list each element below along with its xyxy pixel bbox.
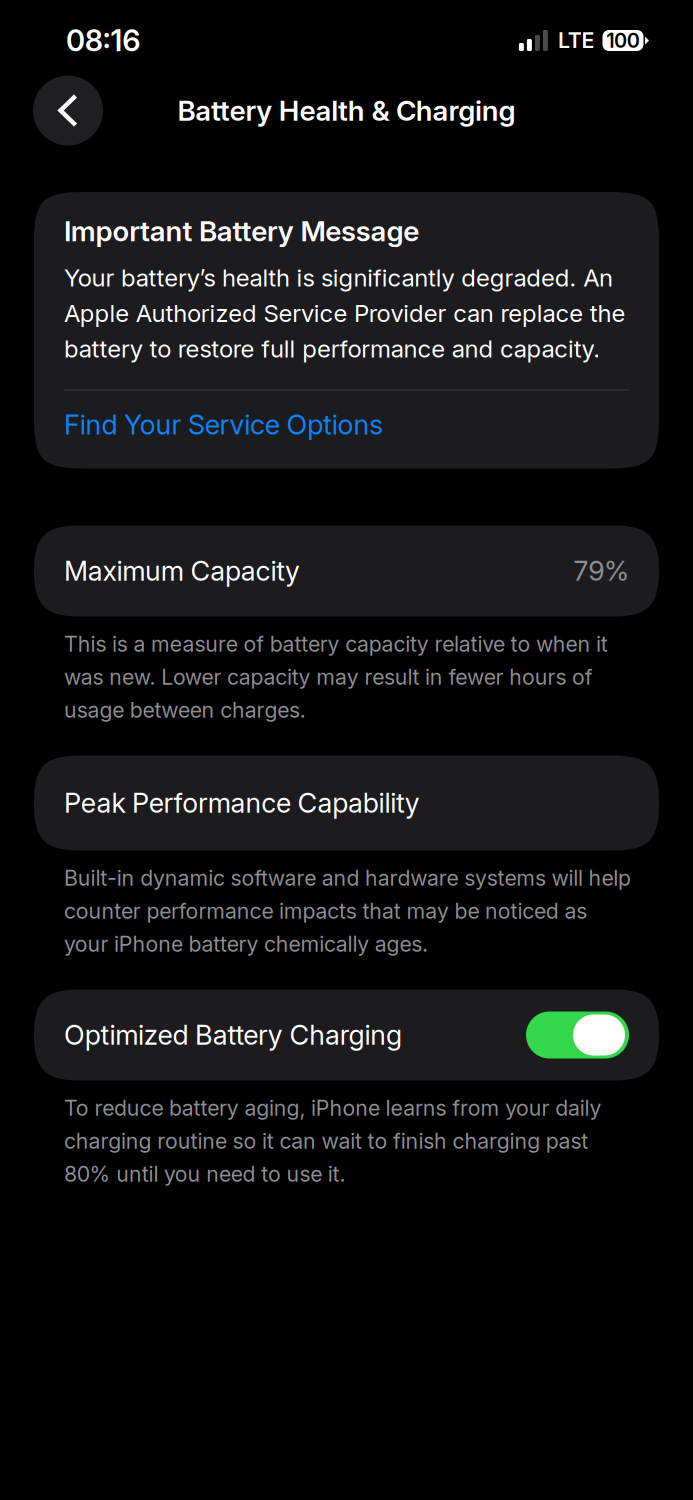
staticText: battery to restore full performance and … (64, 334, 600, 363)
staticText: This is a measure of battery capacity re… (64, 631, 608, 657)
staticText: Battery Health & Charging (177, 94, 516, 127)
staticText: Built-in dynamic software and hardware s… (64, 865, 631, 891)
button[interactable]: Find Your Service Options (64, 390, 629, 458)
button[interactable]: Peak Performance Capability (34, 755, 659, 850)
staticText: 08:16 (66, 23, 140, 58)
staticText: 100 (606, 28, 640, 53)
staticText: charging routine so it can wait to finis… (64, 1128, 588, 1154)
staticText: Apple Authorized Service Provider can re… (64, 299, 625, 328)
staticText: 80% until you need to use it. (64, 1161, 345, 1187)
staticText: Find Your Service Options (64, 408, 383, 441)
staticText: To reduce battery aging, iPhone learns f… (64, 1095, 601, 1121)
staticText: 79% (573, 555, 629, 587)
staticText: LTE (558, 28, 594, 53)
staticText: your iPhone battery chemically ages. (64, 931, 428, 957)
button[interactable]: Back (33, 75, 103, 145)
button[interactable]: Maximum Capacity (34, 525, 659, 616)
staticText: Your battery’s health is significantly d… (64, 263, 613, 292)
staticText: Maximum Capacity (64, 555, 300, 587)
button[interactable]: Optimized Battery Charging (34, 989, 659, 1080)
staticText: Important Battery Message (64, 214, 419, 248)
staticText: Optimized Battery Charging (64, 1019, 402, 1051)
staticText: counter performance impacts that may be … (64, 898, 587, 924)
staticText: usage between charges. (64, 697, 306, 723)
staticText: was new. Lower capacity may result in fe… (64, 664, 593, 690)
staticText: Peak Performance Capability (64, 787, 420, 819)
